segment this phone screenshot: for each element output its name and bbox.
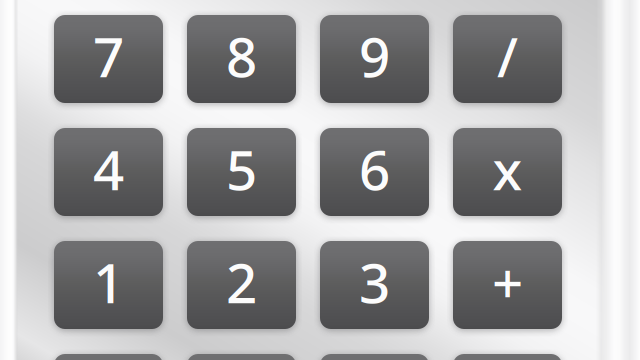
- button[interactable]: x: [453, 128, 562, 216]
- button[interactable]: 6: [320, 128, 429, 216]
- staticText: 7: [93, 20, 124, 92]
- staticText: 8: [226, 20, 257, 92]
- button[interactable]: 0: [54, 354, 163, 360]
- staticText: 9: [359, 20, 390, 92]
- button[interactable]: 3: [320, 241, 429, 329]
- staticText: x: [492, 133, 522, 205]
- button[interactable]: 1: [54, 241, 163, 329]
- staticText: +: [492, 246, 523, 318]
- staticText: 3: [359, 246, 390, 318]
- button[interactable]: 4: [54, 128, 163, 216]
- button[interactable]: -: [453, 354, 562, 360]
- staticText: 1: [93, 246, 124, 318]
- staticText: 5: [226, 133, 257, 205]
- staticText: 2: [226, 246, 257, 318]
- button[interactable]: 5: [187, 128, 296, 216]
- button[interactable]: 7: [54, 15, 163, 103]
- button[interactable]: =: [320, 354, 429, 360]
- button[interactable]: +: [453, 241, 562, 329]
- button[interactable]: 2: [187, 241, 296, 329]
- button[interactable]: /: [453, 15, 562, 103]
- button[interactable]: .: [187, 354, 296, 360]
- button[interactable]: 9: [320, 15, 429, 103]
- staticText: /: [497, 20, 518, 92]
- button[interactable]: 8: [187, 15, 296, 103]
- staticText: 6: [359, 133, 390, 205]
- staticText: 4: [93, 133, 124, 205]
